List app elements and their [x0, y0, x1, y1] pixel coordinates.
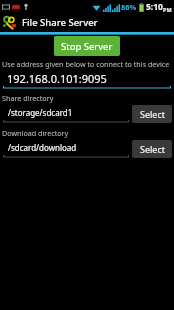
staticText: 5:10 [146, 1, 163, 13]
button[interactable]: Stop Server [54, 36, 120, 56]
button[interactable]: /storage/sdcard1 [3, 105, 129, 120]
staticText: Download directory [2, 128, 69, 138]
other: App icon [3, 16, 17, 30]
button[interactable]: 192.168.0.101:9095 [3, 71, 171, 86]
staticText: File Share Server [22, 16, 98, 29]
staticText: 86% [121, 2, 137, 12]
staticText: Stop Server [61, 40, 113, 53]
staticText: Select [140, 143, 165, 155]
staticText: /sdcard/download [8, 142, 77, 153]
button[interactable]: Select [132, 140, 172, 158]
staticText: /storage/sdcard1 [8, 107, 73, 118]
staticText: PM [163, 6, 172, 13]
staticText: 192.168.0.101:9095 [7, 71, 107, 86]
button[interactable]: /sdcard/download [3, 140, 129, 155]
staticText: Use address given below to connect to th… [2, 59, 172, 69]
button[interactable]: Select [132, 105, 172, 123]
staticText: Share directory [2, 93, 54, 103]
staticText: Select [140, 108, 165, 120]
